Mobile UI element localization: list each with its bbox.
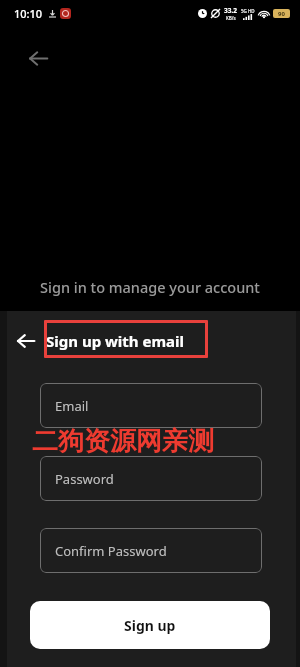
button[interactable]: Password <box>40 456 262 501</box>
staticText: 33.2 <box>224 6 237 15</box>
staticText: Confirm Password <box>55 542 167 560</box>
button[interactable]: Back <box>10 325 42 357</box>
button[interactable]: Confirm Password <box>40 528 262 573</box>
staticText: Sign up <box>124 616 176 635</box>
staticText: 10:10 <box>14 6 43 21</box>
staticText: Sign up with email <box>46 331 185 351</box>
staticText: 5G HD <box>241 8 255 14</box>
button[interactable]: Email <box>40 383 262 428</box>
staticText: KB/s <box>226 15 236 21</box>
staticText: 二狗资源网亲测 <box>32 425 214 458</box>
staticText: Sign in to manage your account <box>40 277 260 297</box>
staticText: Password <box>55 470 114 488</box>
staticText: 90 <box>278 10 285 18</box>
button[interactable]: Back <box>22 42 54 74</box>
staticText: Email <box>55 397 89 415</box>
button[interactable]: Sign up <box>30 601 270 649</box>
